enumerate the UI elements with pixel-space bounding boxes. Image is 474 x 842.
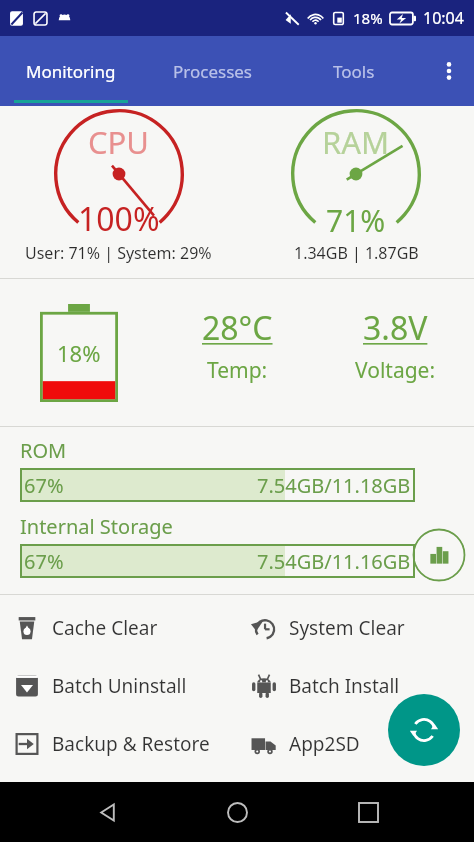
- staticText: 18%: [57, 338, 101, 368]
- button[interactable]: System Clear: [237, 599, 474, 657]
- staticText: 67%: [24, 472, 64, 499]
- button[interactable]: Tools: [283, 36, 424, 106]
- staticText: Internal Storage: [20, 513, 173, 540]
- staticText: Backup & Restore: [52, 731, 210, 757]
- button[interactable]: Back: [83, 788, 131, 836]
- staticText: 7.54GB/11.16GB: [257, 548, 411, 575]
- staticText: RAM: [322, 121, 390, 163]
- staticText: Cache Clear: [52, 615, 158, 641]
- button[interactable]: 28°C: [158, 279, 316, 426]
- staticText: System Clear: [289, 615, 405, 641]
- staticText: 18%: [353, 8, 383, 28]
- staticText: Voltage:: [355, 356, 436, 385]
- staticText: 1.34GB | 1.87GB: [294, 242, 419, 264]
- button[interactable]: 3.8V: [316, 279, 474, 426]
- staticText: 7.54GB/11.18GB: [257, 472, 411, 499]
- button[interactable]: Home: [213, 788, 261, 836]
- button[interactable]: CPU: [0, 106, 237, 278]
- staticText: Batch Uninstall: [52, 673, 187, 699]
- staticText: User: 71% | System: 29%: [25, 242, 212, 264]
- button[interactable]: Processes: [142, 36, 283, 106]
- button[interactable]: Storage details: [412, 528, 466, 582]
- staticText: ROM: [20, 437, 67, 464]
- staticText: Monitoring: [26, 60, 116, 83]
- button[interactable]: RAM: [237, 106, 474, 278]
- staticText: 71%: [326, 200, 386, 241]
- staticText: 100%: [78, 197, 160, 241]
- button[interactable]: Battery 18 percent: [40, 304, 118, 402]
- staticText: Tools: [333, 60, 375, 83]
- button[interactable]: Refresh: [388, 694, 460, 766]
- button[interactable]: Batch Uninstall: [0, 657, 237, 715]
- staticText: CPU: [88, 121, 150, 163]
- button[interactable]: Cache Clear: [0, 599, 237, 657]
- button[interactable]: Monitoring: [0, 36, 142, 106]
- staticText: Batch Install: [289, 673, 400, 699]
- button[interactable]: More options: [424, 36, 474, 106]
- button[interactable]: Backup & Restore: [0, 715, 237, 773]
- staticText: 3.8V: [363, 306, 428, 350]
- staticText: Processes: [173, 60, 253, 83]
- staticText: App2SD: [289, 731, 360, 757]
- button[interactable]: 67%: [20, 468, 415, 502]
- staticText: 28°C: [202, 306, 273, 350]
- button[interactable]: Batch Install: [237, 657, 474, 715]
- staticText: Temp:: [207, 356, 268, 385]
- button[interactable]: 67%: [20, 544, 415, 578]
- button[interactable]: App2SD: [237, 715, 474, 773]
- button[interactable]: Recents: [344, 788, 392, 836]
- staticText: 10:04: [423, 7, 464, 29]
- staticText: 67%: [24, 548, 64, 575]
